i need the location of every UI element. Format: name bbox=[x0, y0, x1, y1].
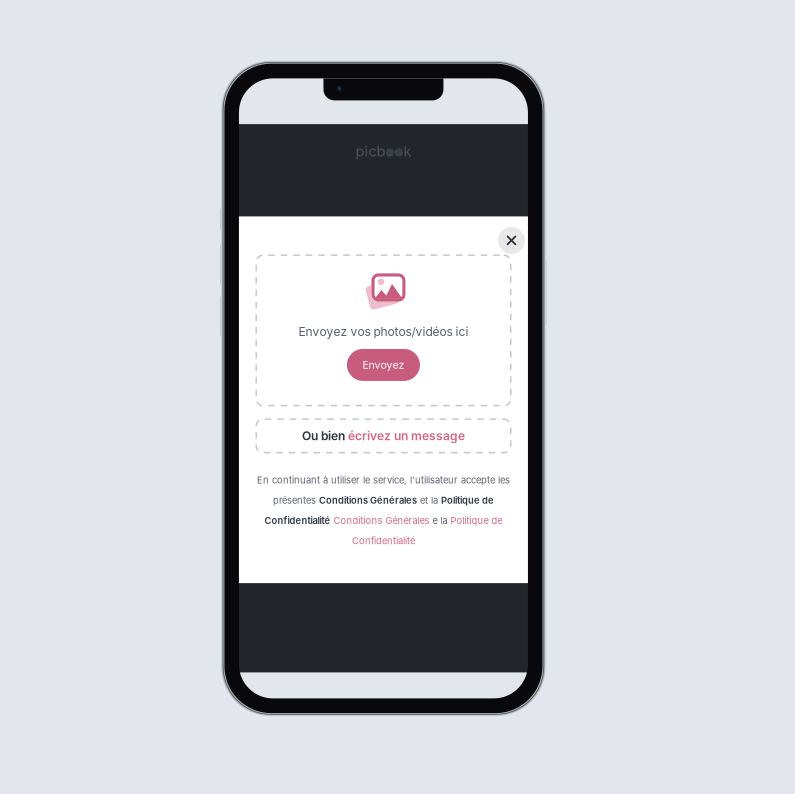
staticText: e la bbox=[429, 515, 450, 526]
staticText: Ou bien bbox=[302, 429, 348, 443]
button[interactable]: Envoyez bbox=[347, 349, 420, 381]
button[interactable]: Ou bien bbox=[255, 418, 511, 453]
staticText: Confidentialité bbox=[264, 515, 330, 526]
staticText: Politique de bbox=[441, 495, 494, 506]
staticText: Envoyez bbox=[362, 358, 404, 371]
button[interactable]: Fermer bbox=[498, 227, 525, 254]
staticText: Conditions Générales bbox=[319, 495, 417, 506]
staticText: présentes bbox=[273, 495, 319, 506]
staticText: et la bbox=[417, 495, 441, 506]
staticText: picb bbox=[355, 142, 385, 160]
staticText: En continuant à utiliser le service, l'u… bbox=[257, 474, 510, 486]
staticText: oo bbox=[385, 142, 403, 160]
staticText: Politique de bbox=[450, 515, 502, 526]
staticText: écrivez un message bbox=[348, 429, 465, 443]
staticText: k bbox=[403, 142, 411, 160]
staticText: Conditions Générales bbox=[333, 515, 429, 526]
staticText: Confidentialité bbox=[352, 535, 415, 547]
staticText: Envoyez vos photos/vidéos ici bbox=[298, 324, 468, 339]
